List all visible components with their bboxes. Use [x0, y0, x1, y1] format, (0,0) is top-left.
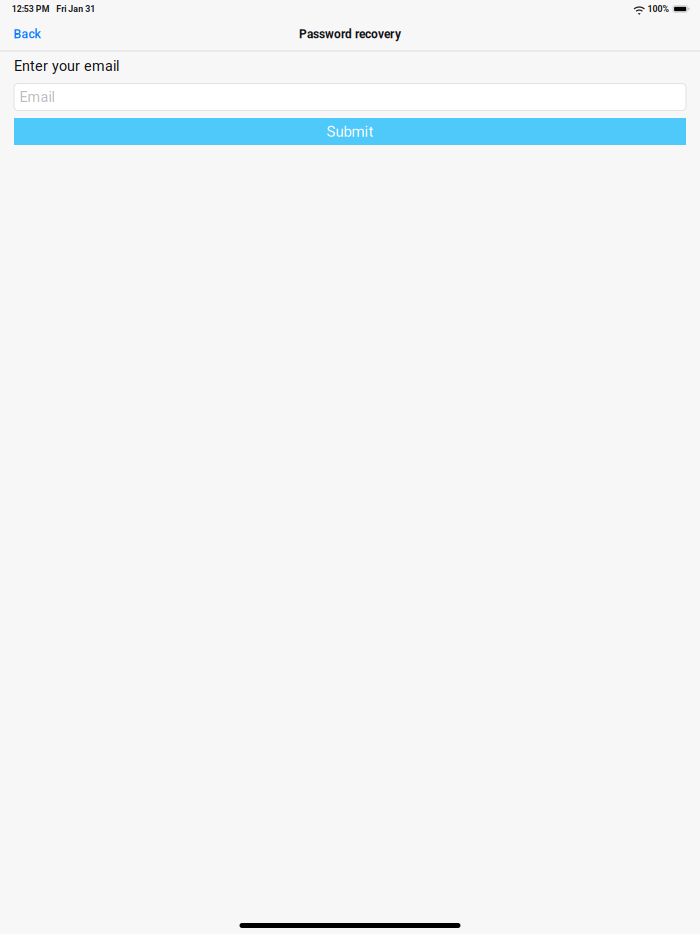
staticText: 12:53 PM: [12, 4, 50, 14]
button[interactable]: Submit: [14, 118, 686, 145]
staticText: Enter your email: [14, 58, 119, 74]
staticText: Email: [19, 89, 54, 105]
staticText: Fri Jan 31: [56, 4, 95, 14]
staticText: Password recovery: [299, 27, 401, 41]
staticText: 100%: [648, 4, 670, 14]
staticText: Submit: [326, 123, 373, 140]
button[interactable]: Back: [0, 20, 52, 51]
staticText: Back: [13, 27, 40, 41]
